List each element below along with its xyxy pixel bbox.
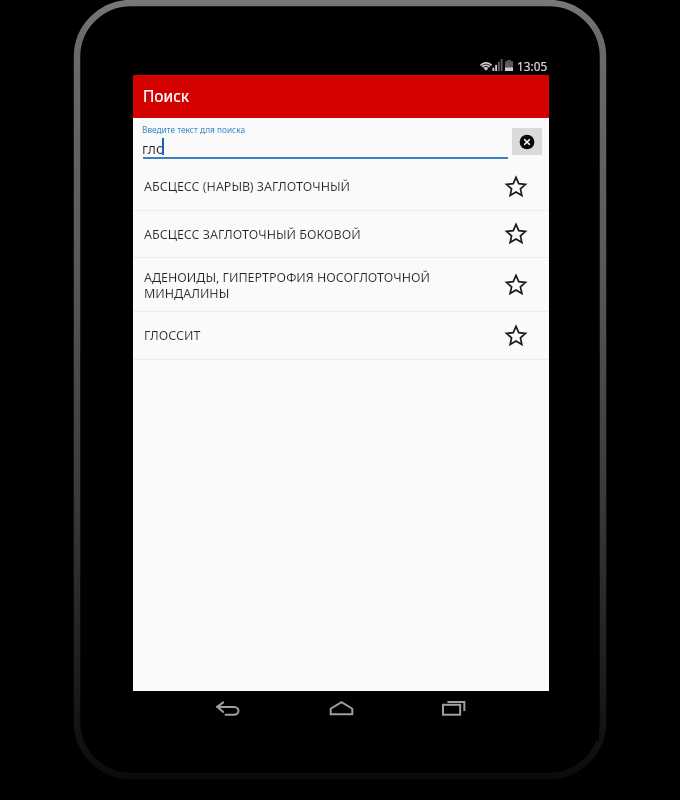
- button[interactable]: ГЛОССИТ: [133, 312, 549, 359]
- button[interactable]: АДЕНОИДЫ, ГИПЕРТРОФИЯ НОСОГЛОТОЧНОЙ МИНД…: [133, 258, 549, 311]
- button[interactable]: Home: [317, 692, 365, 724]
- staticText: Поиск: [143, 85, 190, 106]
- staticText: Введите текст для поиска: [142, 124, 246, 135]
- button[interactable]: Search field: [142, 121, 508, 160]
- button[interactable]: Add to favourites: [499, 319, 533, 353]
- button[interactable]: Add to favourites: [499, 217, 533, 251]
- staticText: гло: [142, 139, 165, 158]
- button[interactable]: Clear search text: [512, 128, 542, 155]
- button[interactable]: Add to favourites: [499, 268, 533, 302]
- button[interactable]: Recents: [430, 692, 478, 724]
- staticText: ГЛОССИТ: [144, 327, 464, 344]
- button[interactable]: АБСЦЕСС (НАРЫВ) ЗАГЛОТОЧНЫЙ: [133, 163, 549, 210]
- button[interactable]: Back: [204, 692, 252, 724]
- staticText: АБСЦЕСС ЗАГЛОТОЧНЫЙ БОКОВОЙ: [144, 226, 464, 243]
- staticText: АБСЦЕСС (НАРЫВ) ЗАГЛОТОЧНЫЙ: [144, 178, 464, 195]
- button[interactable]: АБСЦЕСС ЗАГЛОТОЧНЫЙ БОКОВОЙ: [133, 211, 549, 257]
- staticText: АДЕНОИДЫ, ГИПЕРТРОФИЯ НОСОГЛОТОЧНОЙ МИНД…: [144, 269, 464, 301]
- staticText: 13:05: [517, 58, 548, 74]
- button[interactable]: Add to favourites: [499, 170, 533, 204]
